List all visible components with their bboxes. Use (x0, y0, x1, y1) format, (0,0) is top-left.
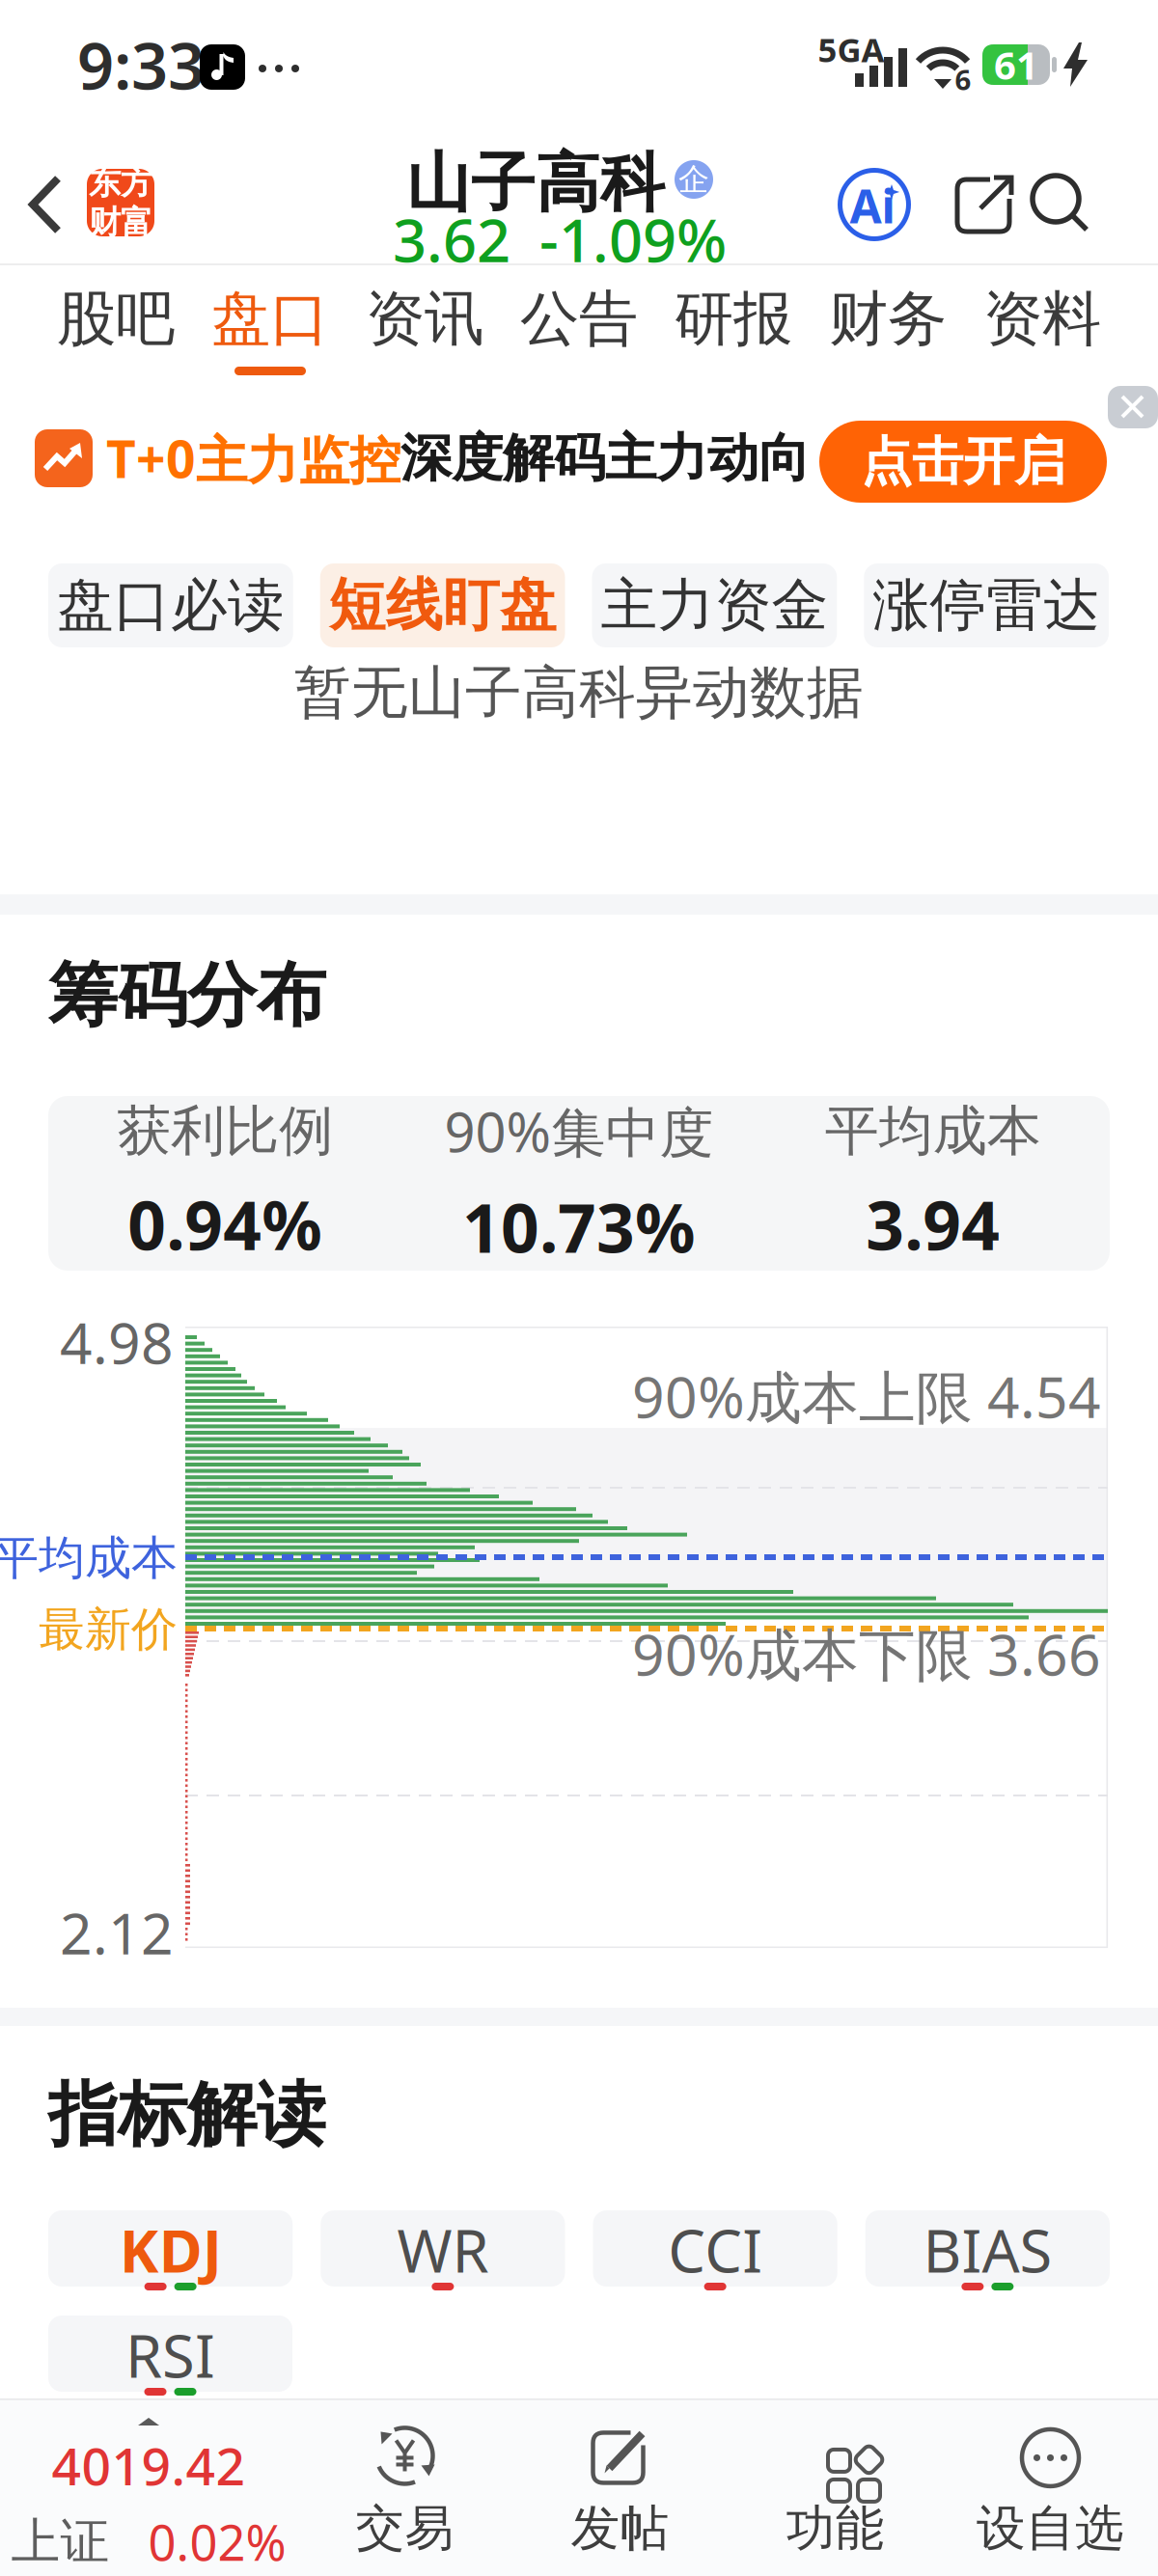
button[interactable]: 功能 (728, 2426, 943, 2558)
button[interactable]: 搜索 (1029, 172, 1094, 237)
staticText: 平均成本 (0, 1530, 178, 1587)
staticText: 研报 (675, 282, 792, 355)
button[interactable]: 交易 (297, 2426, 512, 2558)
staticText: 5GA (818, 27, 884, 71)
staticText: 90%集中度 (444, 1095, 714, 1167)
staticText: -1.09% (539, 200, 727, 279)
button[interactable]: 发帖 (512, 2426, 728, 2558)
button[interactable]: 返回 (21, 174, 75, 237)
button[interactable]: CCI (593, 2210, 837, 2287)
staticText: 3.62 (393, 200, 510, 279)
staticText: 财务 (829, 282, 947, 355)
staticText: CCI (668, 2210, 762, 2287)
staticText: 涨停雷达 (872, 571, 1100, 640)
staticText: 3.94 (866, 1180, 1000, 1269)
staticText: 东方 (89, 163, 152, 203)
staticText: 点击开启 (861, 430, 1065, 493)
button[interactable]: 股吧 (39, 265, 193, 386)
staticText: 2.12 (60, 1895, 174, 1970)
staticText: T+0主力监控 (106, 424, 400, 493)
button[interactable]: 研报 (656, 265, 811, 386)
button[interactable]: 关闭 (1108, 386, 1158, 428)
staticText: 0.02% (148, 2509, 286, 2574)
staticText: RSI (125, 2316, 215, 2392)
button[interactable]: WR (321, 2210, 565, 2287)
staticText: Ai (850, 175, 895, 236)
button[interactable]: 财务 (811, 265, 965, 386)
staticText: 山子高科 (406, 144, 665, 223)
button[interactable]: 资料 (965, 265, 1119, 386)
staticText: 暂无山子高科异动数据 (294, 658, 864, 728)
button[interactable]: 涨停雷达 (864, 563, 1109, 647)
staticText: 9:33 (77, 22, 205, 107)
button[interactable]: 盘口必读 (48, 563, 293, 647)
button[interactable]: 短线盯盘 (320, 563, 565, 647)
button[interactable]: RSI (48, 2316, 292, 2392)
staticText: 6 (955, 60, 971, 98)
staticText: 资料 (983, 282, 1101, 355)
staticText: KDJ (119, 2210, 222, 2287)
staticText: 90%成本上限 4.54 (632, 1358, 1101, 1434)
button[interactable]: KDJ (48, 2210, 293, 2287)
staticText: 功能 (786, 2498, 884, 2558)
button[interactable]: BIAS (865, 2210, 1110, 2287)
staticText: 短线盯盘 (329, 571, 556, 640)
staticText: 上证 (11, 2512, 110, 2572)
button[interactable]: 东方财富 (87, 169, 154, 236)
button[interactable]: 分享 (951, 172, 1017, 237)
button[interactable]: 点击开启 (819, 421, 1107, 503)
staticText: 4.98 (60, 1304, 174, 1380)
button[interactable]: 盘口 (193, 265, 347, 386)
staticText: 股吧 (57, 282, 175, 355)
button[interactable]: Ai 助手 (838, 168, 911, 241)
staticText: 深度解码主力动向 (400, 427, 810, 490)
staticText: 指标解读 (48, 2072, 326, 2157)
staticText: 61 (994, 39, 1038, 90)
staticText: 企 (678, 160, 709, 198)
button[interactable]: 4019.42 (0, 2410, 297, 2574)
button[interactable]: 主力资金 (592, 563, 837, 647)
staticText: WR (397, 2210, 489, 2287)
staticText: 平均成本 (825, 1098, 1041, 1164)
staticText: 财富 (89, 203, 152, 242)
staticText: 0.94% (128, 1180, 323, 1269)
staticText: 发帖 (571, 2498, 669, 2558)
staticText: BIAS (923, 2210, 1052, 2287)
button[interactable]: 公告 (502, 265, 656, 386)
button[interactable]: 资讯 (347, 265, 502, 386)
staticText: 交易 (356, 2498, 454, 2558)
staticText: 获利比例 (117, 1098, 333, 1164)
staticText: 筹码分布 (48, 953, 326, 1038)
staticText: 公告 (520, 282, 638, 355)
staticText: 盘口 (211, 282, 329, 355)
staticText: 资讯 (366, 282, 483, 355)
staticText: 盘口必读 (57, 571, 285, 640)
staticText: 主力资金 (601, 571, 828, 640)
staticText: 10.73% (462, 1182, 696, 1271)
staticText: 4019.42 (52, 2431, 246, 2500)
staticText: 最新价 (39, 1601, 178, 1658)
staticText: 90%成本下限 3.66 (632, 1616, 1101, 1691)
button[interactable]: 设自选 (943, 2426, 1158, 2558)
staticText: 设自选 (977, 2498, 1124, 2558)
